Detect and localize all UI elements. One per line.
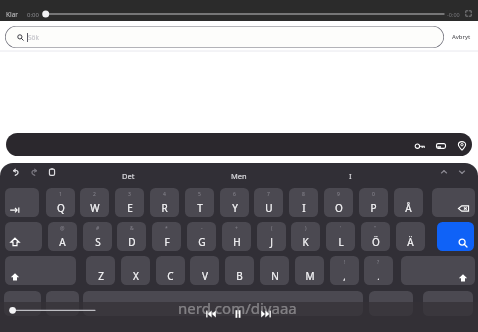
staticText: ' [340,225,342,232]
button[interactable]: 5 [185,188,214,217]
button[interactable]: Z [86,256,115,285]
button[interactable]: Pause [232,308,244,320]
staticText: 9 [337,191,340,198]
button[interactable]: Search [437,222,474,251]
button[interactable]: Payment methods [434,139,447,152]
staticText: . [377,270,380,282]
button[interactable]: 2 [80,188,109,217]
staticText: Sök [28,33,39,42]
staticText: 4 [163,191,166,198]
button[interactable]: Ä [396,222,425,251]
button[interactable]: Redo [30,168,38,176]
staticText: X [133,269,139,283]
button[interactable]: Shift [401,256,475,285]
staticText: O [335,201,343,215]
staticText: F [164,235,170,249]
staticText: B [236,269,243,283]
staticText: 0 [372,191,375,198]
button[interactable]: Backspace [432,188,475,217]
button[interactable]: Emoji [46,291,79,316]
button[interactable]: 0 [359,188,388,217]
staticText: H [233,235,241,249]
button[interactable]: # [83,222,112,251]
button[interactable]: Symbols [4,291,41,316]
button[interactable]: ? [364,256,393,285]
button[interactable]: I [310,163,390,189]
button[interactable]: Shift [5,256,76,285]
button[interactable]: More suggestions [458,168,466,176]
button[interactable]: 9 [324,188,353,217]
staticText: # [96,225,100,232]
button[interactable]: Previous [205,308,217,320]
staticText: 1 [59,191,62,198]
staticText: ! [344,259,346,266]
staticText: T [197,201,203,215]
button[interactable]: X [121,256,150,285]
staticText: Z [98,269,104,283]
staticText: nerd.com/divaaa [178,298,297,318]
button[interactable]: Voice input [423,291,473,316]
button[interactable]: Previous suggestion [440,168,448,176]
button[interactable]: Å [394,188,423,217]
button[interactable]: 8 [289,188,318,217]
button[interactable]: - [187,222,216,251]
button[interactable]: N [260,256,289,285]
button[interactable]: Space [83,291,363,316]
button[interactable]: Sök [5,26,444,48]
button[interactable]: ' [326,222,355,251]
button[interactable]: Men [199,163,279,189]
staticText: 0:00 [27,11,39,19]
button[interactable]: Tab [5,188,39,217]
staticText: P [370,201,377,215]
staticText: I [349,171,352,181]
staticText: S [95,235,101,249]
button[interactable]: B [225,256,254,285]
staticText: -0:00 [447,11,460,18]
button[interactable]: @ [48,222,77,251]
staticText: 6 [233,191,236,198]
staticText: - [201,225,203,232]
button[interactable]: Caps lock [5,222,42,251]
button[interactable]: V [190,256,219,285]
button[interactable]: 3 [115,188,144,217]
button[interactable]: Det [88,163,168,189]
button[interactable]: Avbryt [452,33,471,41]
staticText: Å [405,201,412,215]
staticText: + [235,225,238,232]
staticText: Q [57,201,65,215]
button[interactable]: Undo [12,168,20,176]
button[interactable]: ! [330,256,359,285]
button[interactable]: Language [369,291,413,316]
staticText: U [265,201,273,215]
button[interactable]: 6 [220,188,249,217]
button[interactable]: Addresses [455,139,468,152]
staticText: ) [305,225,307,232]
staticText: R [161,201,168,215]
staticText: 3 [128,191,131,198]
staticText: V [202,269,208,283]
button[interactable]: 4 [150,188,179,217]
button[interactable]: C [156,256,185,285]
button[interactable]: ) [291,222,320,251]
button[interactable]: Next [260,308,272,320]
button[interactable]: 7 [254,188,283,217]
button[interactable]: Full screen [464,9,473,18]
staticText: 7 [267,191,270,198]
button[interactable]: Klar [6,10,19,19]
staticText: * [165,225,168,232]
staticText: @ [60,225,65,232]
staticText: I [302,201,306,215]
button[interactable]: " [361,222,390,251]
button[interactable]: M [295,256,324,285]
staticText: 2 [93,191,96,198]
staticText: E [127,201,133,215]
button[interactable]: 1 [46,188,75,217]
button[interactable]: Passwords [413,139,426,152]
staticText: D [128,235,136,249]
button[interactable]: ( [257,222,286,251]
button[interactable]: Clipboard [48,168,56,176]
button[interactable]: * [152,222,181,251]
button[interactable]: + [222,222,251,251]
button[interactable]: & [117,222,146,251]
staticText: Men [231,171,247,181]
